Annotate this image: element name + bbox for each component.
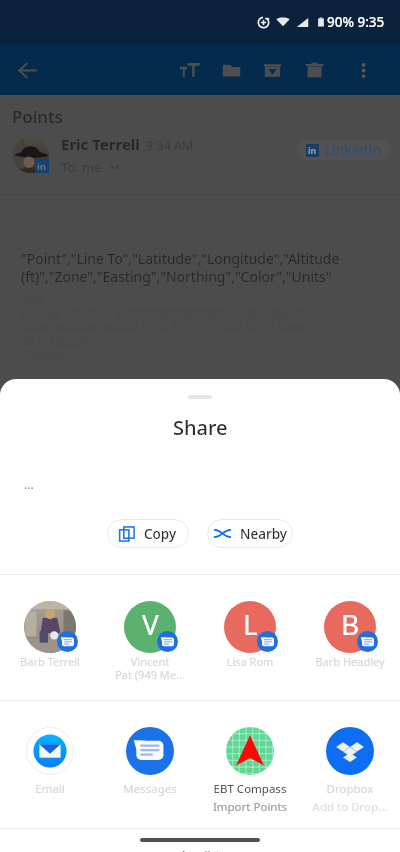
staticText: in xyxy=(308,145,317,157)
staticText: Share xyxy=(173,414,228,441)
button[interactable]: Copy xyxy=(107,519,189,548)
button[interactable]: EBT Compass xyxy=(200,701,300,815)
button[interactable]: Delete xyxy=(294,48,334,92)
staticText: B xyxy=(341,605,360,643)
button[interactable]: V xyxy=(100,575,200,682)
staticText: Add to Drop... xyxy=(302,799,398,815)
button[interactable]: B xyxy=(300,575,400,669)
staticText: Lisa Rom xyxy=(204,654,296,669)
staticText: in xyxy=(37,160,47,173)
button[interactable]: Text size xyxy=(170,48,210,92)
button[interactable]: in xyxy=(296,140,392,160)
staticText: Eric Terrell xyxy=(61,134,140,154)
staticText: Points xyxy=(12,105,63,128)
button[interactable]: Messages xyxy=(100,701,200,797)
button[interactable]: L xyxy=(200,575,300,669)
staticText: 90% 9:35 xyxy=(327,13,385,31)
staticText: EBT Compass xyxy=(202,781,298,797)
staticText: Barb Terrell xyxy=(4,654,96,669)
staticText: ... xyxy=(24,476,34,492)
staticText: Email xyxy=(2,781,98,797)
button[interactable]: Dropbox xyxy=(300,701,400,815)
staticText: Nearby xyxy=(240,525,287,543)
button[interactable]: Archive xyxy=(252,48,292,92)
staticText: Vincent Pat (949 Me... xyxy=(104,654,196,682)
button[interactable]: Move to folder xyxy=(211,48,251,92)
staticText: Copy xyxy=(144,525,177,543)
staticText: App list xyxy=(180,847,221,852)
staticText: Import Points xyxy=(202,799,298,815)
staticText: V xyxy=(142,605,159,643)
staticText: 9:34 AM xyxy=(146,137,194,154)
button[interactable]: Nearby xyxy=(207,519,293,548)
staticText: LinkedIn xyxy=(325,141,382,159)
button[interactable]: Barb Terrell xyxy=(0,575,100,669)
button[interactable]: Back xyxy=(10,53,44,87)
staticText: Dropbox xyxy=(302,781,398,797)
staticText: To: me xyxy=(61,158,102,176)
staticText: Barb Headley xyxy=(304,654,396,669)
staticText: L xyxy=(243,605,258,643)
staticText: Messages xyxy=(102,781,198,797)
button[interactable]: More options xyxy=(343,48,383,92)
button[interactable]: Email xyxy=(0,701,100,797)
staticText: "Point","Line To","Latitude","Longitude"… xyxy=(21,249,360,286)
